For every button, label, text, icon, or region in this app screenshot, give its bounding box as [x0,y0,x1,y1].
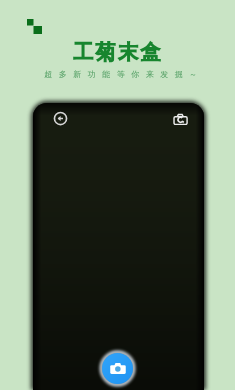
button[interactable]: Back [53,111,68,126]
staticText: 工菊末盒 [73,40,163,65]
button[interactable]: Take photo [99,350,136,387]
staticText: 超多新功能等你来发掘～ [44,69,204,79]
button[interactable]: Switch camera [172,111,188,127]
